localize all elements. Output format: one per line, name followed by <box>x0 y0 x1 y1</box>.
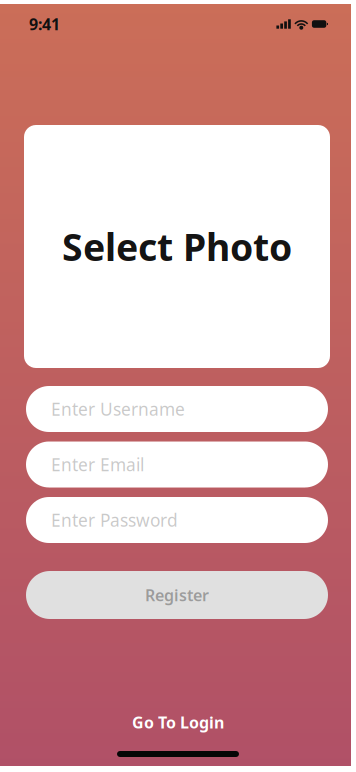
staticText: Enter Password <box>51 508 178 531</box>
button[interactable]: Enter Password <box>26 497 328 543</box>
staticText: Go To Login <box>132 712 224 733</box>
button[interactable]: Enter Username <box>26 386 328 432</box>
staticText: Enter Username <box>51 397 185 420</box>
button[interactable]: Enter Email <box>26 441 328 487</box>
button[interactable]: Register <box>26 571 328 619</box>
staticText: Register <box>145 584 209 606</box>
staticText: Select Photo <box>62 222 292 271</box>
staticText: Enter Email <box>51 453 144 476</box>
button[interactable]: Select Photo <box>24 125 330 368</box>
staticText: 9:41 <box>29 13 60 35</box>
button[interactable]: Go To Login <box>114 703 242 742</box>
